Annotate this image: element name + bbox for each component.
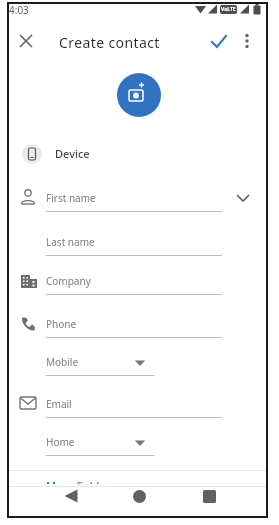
button[interactable]: Phone: [8, 308, 226, 340]
staticText: Home: [46, 435, 75, 449]
button[interactable]: [231, 25, 263, 57]
staticText: Company: [46, 274, 91, 288]
button[interactable]: Email: [8, 388, 226, 420]
staticText: Last name: [46, 235, 95, 249]
button[interactable]: [117, 73, 161, 117]
button[interactable]: [190, 487, 230, 511]
button[interactable]: [203, 25, 235, 57]
staticText: Mobile: [46, 355, 79, 369]
staticText: 4:03: [9, 3, 29, 17]
staticText: Device: [55, 146, 90, 161]
button[interactable]: First name: [8, 182, 226, 214]
staticText: Phone: [46, 317, 77, 331]
button[interactable]: Company: [8, 265, 226, 297]
button[interactable]: [227, 182, 259, 214]
button[interactable]: [10, 25, 42, 57]
button[interactable]: Last name: [8, 226, 226, 258]
button[interactable]: Mobile: [8, 348, 158, 378]
staticText: More fields: [46, 478, 105, 484]
staticText: First name: [46, 191, 96, 205]
button[interactable]: [120, 487, 160, 511]
button[interactable]: Device: [10, 138, 260, 170]
button[interactable]: Home: [8, 428, 158, 458]
staticText: Create contact: [59, 33, 160, 52]
staticText: Email: [46, 397, 72, 411]
button[interactable]: More fields: [38, 478, 128, 484]
button[interactable]: [50, 487, 90, 511]
staticText: VoLTE: [221, 6, 236, 13]
